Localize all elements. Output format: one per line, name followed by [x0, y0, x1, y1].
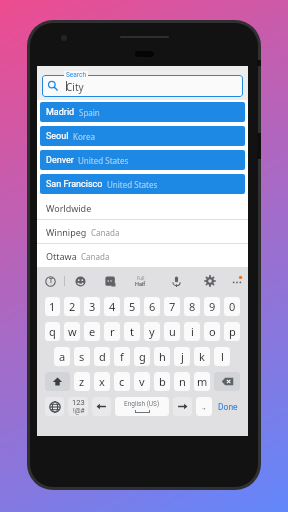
staticText: g — [139, 349, 146, 364]
button[interactable]: u — [164, 322, 180, 341]
staticText: m — [197, 374, 208, 389]
button[interactable]: 9 — [204, 297, 220, 316]
button[interactable]: z — [74, 372, 90, 391]
button[interactable]: m — [194, 372, 210, 391]
button[interactable]: Next — [173, 397, 192, 416]
staticText: 4 — [109, 299, 116, 314]
staticText: 5 — [129, 299, 136, 314]
button[interactable]: Madrid — [40, 102, 245, 122]
button[interactable]: Previous — [92, 397, 111, 416]
staticText: ., — [202, 402, 206, 411]
button[interactable]: g — [134, 347, 150, 366]
button[interactable]: k — [194, 347, 210, 366]
button[interactable]: 0 — [224, 297, 240, 316]
button[interactable]: p — [224, 322, 240, 341]
staticText: p — [229, 324, 236, 339]
button[interactable]: Emoji — [74, 268, 87, 294]
button[interactable]: Translate — [44, 268, 57, 294]
staticText: Denver — [46, 155, 74, 166]
staticText: f — [120, 349, 124, 364]
staticText: Korea — [73, 131, 95, 142]
button[interactable]: Change language — [45, 397, 64, 416]
staticText: 7 — [169, 299, 176, 314]
staticText: Full — [137, 275, 145, 281]
button[interactable]: Voice input — [170, 268, 183, 294]
button[interactable]: b — [154, 372, 170, 391]
button[interactable]: Shift — [45, 372, 70, 391]
button[interactable]: f — [114, 347, 130, 366]
staticText: !@# — [73, 407, 85, 415]
button[interactable]: 8 — [184, 297, 200, 316]
staticText: i — [191, 324, 194, 339]
button[interactable]: c — [114, 372, 130, 391]
staticText: Madrid — [46, 107, 75, 118]
button[interactable]: 6 — [144, 297, 160, 316]
staticText: e — [89, 324, 96, 339]
button[interactable]: q — [45, 322, 60, 341]
button[interactable]: 2 — [64, 297, 80, 316]
button[interactable]: v — [134, 372, 150, 391]
button[interactable]: h — [154, 347, 170, 366]
staticText: w — [68, 324, 77, 339]
button[interactable]: 4 — [104, 297, 120, 316]
staticText: l — [221, 349, 224, 364]
button[interactable]: Seoul — [40, 126, 245, 146]
staticText: d — [99, 349, 106, 364]
button[interactable]: 3 — [84, 297, 100, 316]
button[interactable]: Worldwide — [37, 196, 248, 220]
button[interactable]: e — [84, 322, 100, 341]
staticText: 1 — [49, 299, 56, 314]
staticText: United States — [107, 179, 158, 190]
button[interactable]: w — [64, 322, 80, 341]
button[interactable]: o — [204, 322, 220, 341]
staticText: r — [110, 324, 115, 339]
button[interactable]: a — [54, 347, 70, 366]
button[interactable]: ., — [196, 397, 212, 416]
staticText: 9 — [209, 299, 216, 314]
button[interactable] — [42, 75, 243, 97]
button[interactable]: Denver — [40, 150, 245, 170]
button[interactable]: Settings — [203, 268, 216, 294]
staticText: v — [139, 374, 145, 389]
button[interactable]: 1 — [45, 297, 60, 316]
staticText: Ottawa — [46, 250, 77, 262]
button[interactable]: Ottawa — [37, 244, 248, 268]
button[interactable]: x — [94, 372, 110, 391]
staticText: Winnipeg — [46, 226, 87, 238]
staticText: b — [159, 374, 166, 389]
button[interactable]: Space — [115, 397, 169, 416]
button[interactable]: j — [174, 347, 190, 366]
staticText: T — [49, 277, 53, 285]
staticText: o — [209, 324, 216, 339]
button[interactable]: l — [214, 347, 230, 366]
staticText: h — [159, 349, 166, 364]
button[interactable]: Done — [214, 394, 242, 419]
button[interactable]: Stickers — [104, 268, 117, 294]
staticText: Canada — [91, 227, 120, 238]
button[interactable]: 7 — [164, 297, 180, 316]
button[interactable]: Symbols — [68, 397, 88, 416]
staticText: Half — [135, 281, 146, 287]
button[interactable]: d — [94, 347, 110, 366]
button[interactable]: i — [184, 322, 200, 341]
staticText: y — [149, 324, 155, 339]
button[interactable]: n — [174, 372, 190, 391]
staticText: s — [79, 349, 85, 364]
button[interactable]: s — [74, 347, 90, 366]
staticText: Done — [218, 402, 238, 412]
staticText: 123 — [72, 398, 85, 407]
button[interactable]: y — [144, 322, 160, 341]
button[interactable]: r — [104, 322, 120, 341]
staticText: n — [179, 374, 186, 389]
staticText: Canada — [81, 251, 110, 262]
button[interactable]: Text size — [134, 268, 147, 294]
staticText: Spain — [79, 107, 100, 118]
staticText: 6 — [149, 299, 156, 314]
button[interactable]: Backspace — [214, 372, 240, 391]
button[interactable]: San Francisco — [40, 174, 245, 194]
button[interactable]: Winnipeg — [37, 220, 248, 244]
button[interactable]: More options — [230, 268, 243, 294]
staticText: z — [79, 374, 85, 389]
button[interactable]: t — [124, 322, 140, 341]
button[interactable]: 5 — [124, 297, 140, 316]
